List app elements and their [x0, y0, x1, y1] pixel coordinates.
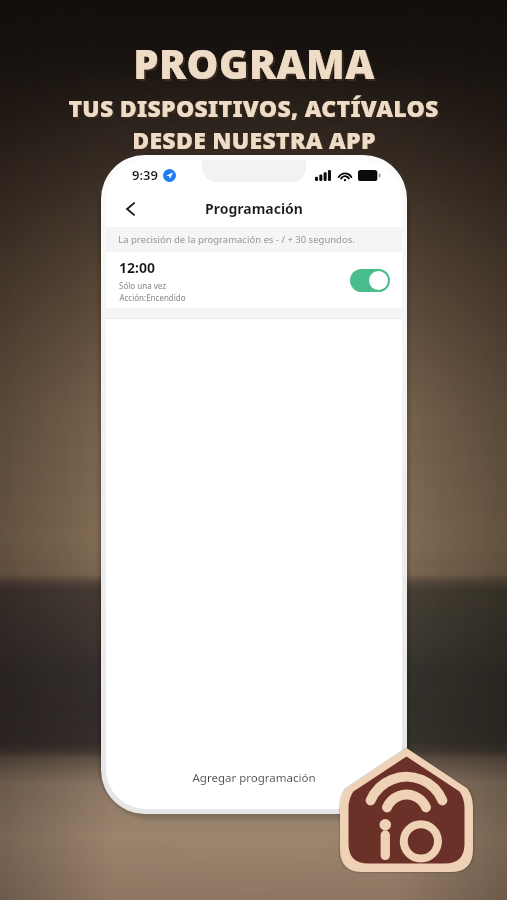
staticText: PROGRAMA: [135, 38, 377, 92]
staticText: TUS DISPOSITIVOS, ACTÍVALOS: [68, 92, 439, 123]
button[interactable]: iO app logo: [338, 746, 475, 874]
staticText: Sólo una vez: [119, 280, 166, 291]
button[interactable]: Back: [114, 192, 148, 226]
staticText: PROGRAMA: [133, 36, 375, 90]
staticText: 9:39: [132, 166, 158, 184]
button[interactable]: 12:00: [106, 252, 402, 308]
staticText: 12:00: [119, 258, 155, 277]
staticText: Programación: [205, 199, 303, 218]
staticText: TUS DISPOSITIVOS, ACTÍVALOS: [70, 94, 441, 125]
staticText: DESDE NUESTRA APP: [132, 124, 376, 155]
button[interactable]: Agregar programación: [106, 755, 402, 801]
staticText: La precisión de la programación es - / +…: [118, 233, 355, 246]
staticText: DESDE NUESTRA APP: [134, 126, 378, 157]
staticText: Agregar programación: [192, 770, 316, 786]
staticText: Acción:Encendido: [119, 292, 186, 303]
button[interactable]: Toggle schedule: [350, 269, 390, 292]
